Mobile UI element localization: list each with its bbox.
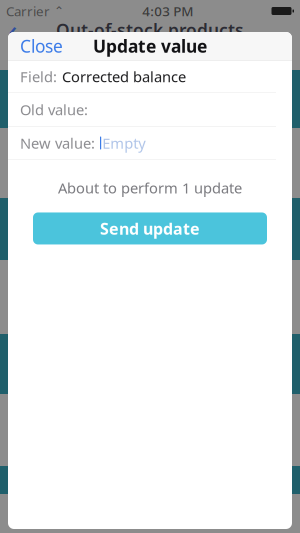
staticText: ⌃ xyxy=(50,4,64,18)
staticText: Field: xyxy=(20,67,57,86)
button[interactable]: Back xyxy=(0,22,26,38)
staticText: Out-of-stock products xyxy=(56,18,244,41)
staticText: 4:03 PM xyxy=(142,2,193,20)
staticText: Update value xyxy=(93,34,207,57)
button[interactable]: Close xyxy=(8,27,75,64)
staticText: Corrected balance xyxy=(62,67,186,86)
staticText: Empty xyxy=(102,133,145,153)
staticText: Close xyxy=(20,34,63,57)
staticText: Carrier xyxy=(6,2,50,20)
staticText: About to perform 1 update xyxy=(58,178,242,197)
staticText: ‹ xyxy=(8,12,17,48)
button[interactable]: Send update xyxy=(33,212,267,244)
staticText: New value: xyxy=(20,133,95,153)
staticText: Send update xyxy=(100,218,200,239)
staticText: Old value: xyxy=(20,100,88,119)
